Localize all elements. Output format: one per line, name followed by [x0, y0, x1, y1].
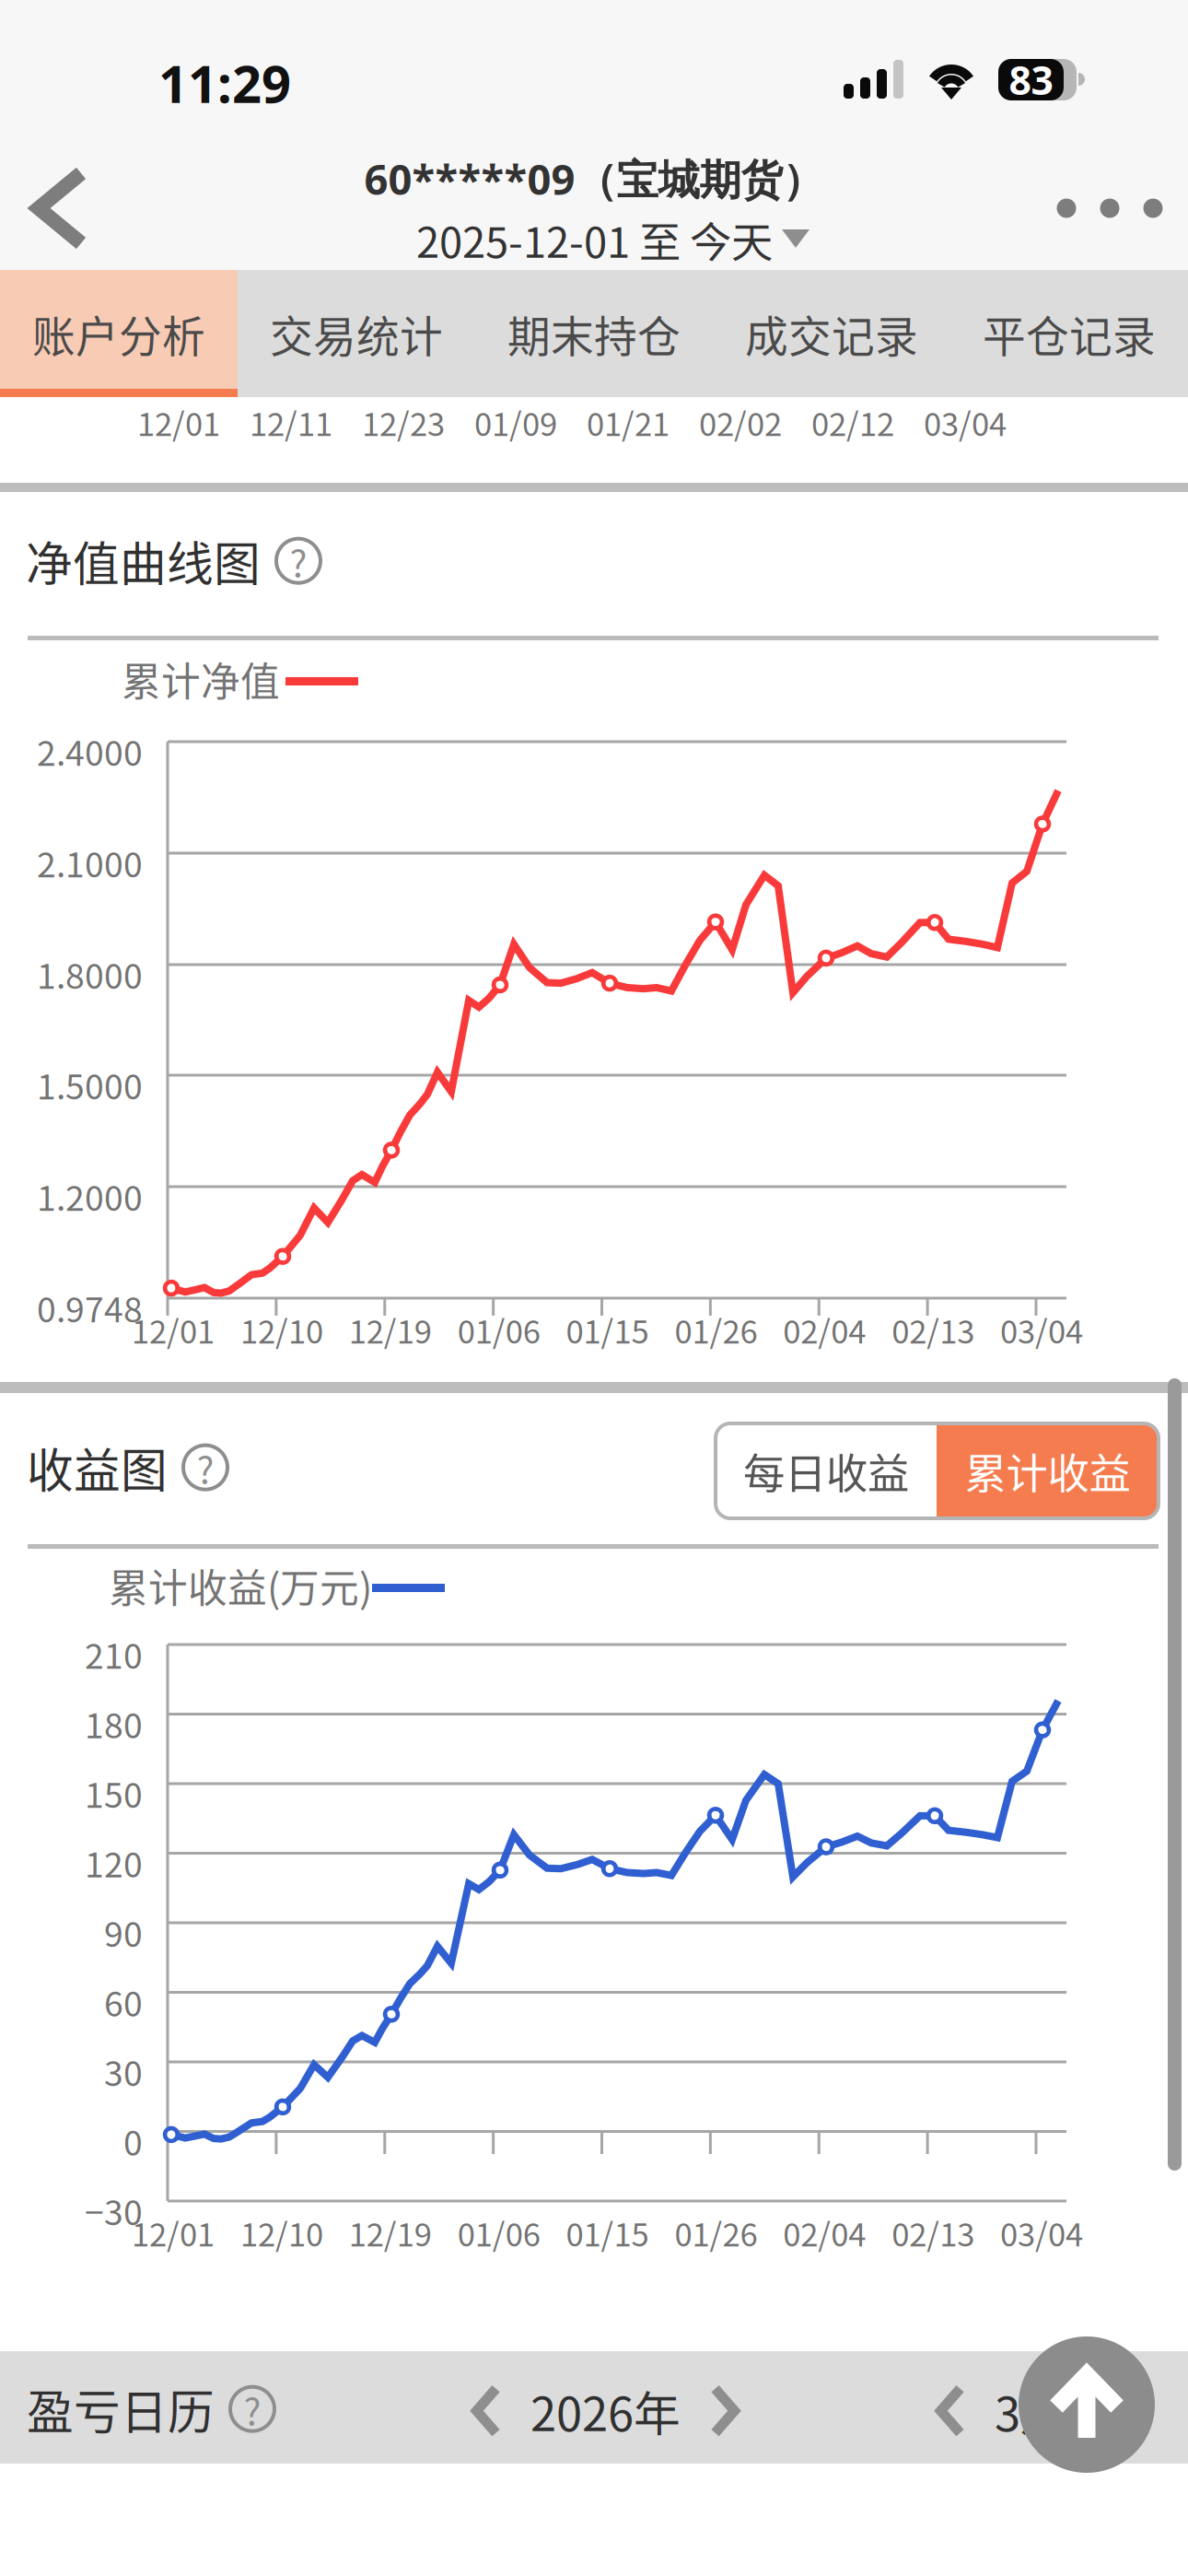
staticText: 01/15 — [566, 1306, 649, 1353]
staticText: 累计收益(万元) — [109, 1557, 372, 1614]
staticText: 2026年 — [530, 2377, 681, 2445]
staticText: 12/01 — [137, 399, 220, 445]
button[interactable]: 每日收益 — [716, 1423, 937, 1518]
staticText: 12/19 — [349, 1306, 432, 1353]
staticText: 02/04 — [783, 1306, 866, 1353]
staticText: 1.5000 — [37, 1060, 143, 1109]
staticText: 120 — [85, 1838, 143, 1887]
button[interactable]: Previous — [468, 2382, 505, 2439]
staticText: ? — [290, 534, 307, 587]
button[interactable]: 平仓记录 — [950, 270, 1188, 397]
staticText: 01/26 — [674, 1306, 757, 1353]
staticText: 2.1000 — [37, 837, 143, 887]
staticText: 净值曲线图 — [26, 527, 261, 595]
staticText: 30 — [104, 2046, 143, 2096]
staticText: 累计收益 — [965, 1441, 1130, 1501]
button[interactable]: 累计收益 — [937, 1423, 1159, 1518]
staticText: 12/10 — [240, 1306, 323, 1353]
staticText: 平仓记录 — [983, 302, 1156, 365]
staticText: 02/02 — [699, 399, 782, 445]
staticText: 90 — [104, 1907, 143, 1957]
staticText: 60 — [104, 1977, 143, 2027]
staticText: 12/10 — [240, 2209, 323, 2256]
staticText: 210 — [85, 1629, 143, 1679]
staticText: 账户分析 — [32, 302, 205, 365]
button[interactable]: 2025-12-01 至 今天 — [416, 217, 809, 262]
staticText: 成交记录 — [745, 302, 918, 365]
staticText: 2025-12-01 至 今天 — [416, 209, 773, 270]
staticText: 每日收益 — [743, 1441, 909, 1501]
staticText: 交易统计 — [270, 302, 443, 365]
staticText: 60*****09（宝城期货） — [364, 150, 824, 207]
staticText: 01/06 — [457, 2209, 540, 2256]
staticText: 1.8000 — [37, 949, 143, 999]
button[interactable]: 交易统计 — [238, 270, 475, 397]
button[interactable]: 成交记录 — [713, 270, 950, 397]
button[interactable]: Next — [706, 2382, 743, 2439]
staticText: 收益图 — [27, 1434, 168, 1501]
staticText: 01/26 — [674, 2209, 757, 2256]
staticText: 02/12 — [811, 399, 894, 445]
staticText: 12/01 — [132, 1306, 215, 1353]
staticText: 180 — [85, 1698, 143, 1748]
button[interactable]: 期末持仓 — [475, 270, 713, 397]
staticText: 01/15 — [566, 2209, 649, 2256]
staticText: 03/04 — [1000, 2209, 1083, 2256]
button[interactable]: More — [1031, 132, 1188, 285]
staticText: 150 — [85, 1768, 143, 1818]
staticText: 03/04 — [924, 399, 1007, 445]
staticText: 12/23 — [362, 399, 445, 445]
staticText: 0 — [123, 2116, 143, 2166]
staticText: 83 — [1009, 53, 1053, 106]
staticText: 12/19 — [349, 2209, 432, 2256]
staticText: ? — [197, 1441, 214, 1494]
staticText: 01/06 — [457, 1306, 540, 1353]
staticText: 3月 — [995, 2377, 1067, 2445]
staticText: 01/21 — [587, 399, 670, 445]
staticText: 盈亏日历 — [27, 2375, 215, 2443]
button[interactable]: Next — [1093, 2382, 1130, 2439]
button[interactable]: Back — [0, 132, 157, 285]
staticText: 1.2000 — [37, 1171, 143, 1221]
staticText: 累计净值 — [122, 650, 280, 707]
staticText: 2.4000 — [37, 726, 143, 776]
staticText: 0.9748 — [37, 1282, 143, 1332]
button[interactable]: Previous — [932, 2382, 969, 2439]
staticText: 02/13 — [892, 1306, 974, 1353]
staticText: 02/13 — [892, 2209, 974, 2256]
staticText: 01/09 — [474, 399, 557, 445]
staticText: 03/04 — [1000, 1306, 1083, 1353]
button[interactable]: 账户分析 — [0, 270, 238, 397]
staticText: 12/11 — [250, 399, 332, 445]
staticText: 12/01 — [132, 2209, 215, 2256]
staticText: −30 — [85, 2185, 143, 2235]
button[interactable]: Scroll to top — [1019, 2336, 1155, 2473]
staticText: 期末持仓 — [507, 302, 681, 365]
staticText: ? — [244, 2382, 261, 2436]
staticText: 11:29 — [158, 48, 291, 118]
staticText: 02/04 — [783, 2209, 866, 2256]
